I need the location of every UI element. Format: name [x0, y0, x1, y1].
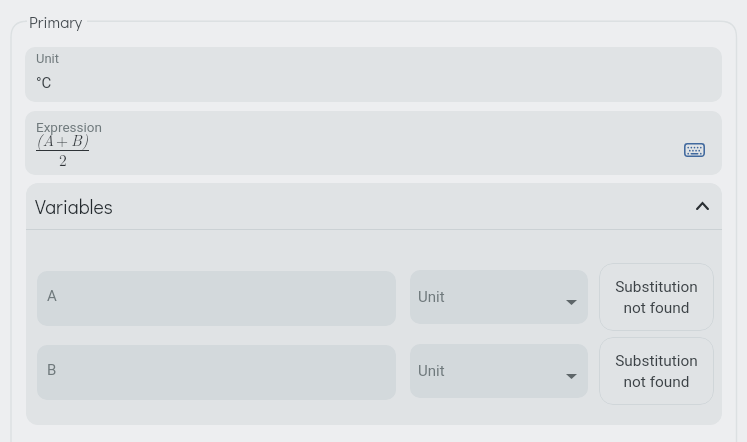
button[interactable]: Substitution not found: [599, 337, 714, 405]
staticText: Substitution not found: [615, 278, 698, 317]
staticText: (A: [36, 128, 54, 150]
staticText: +: [56, 128, 69, 150]
button[interactable]: Substitution not found: [599, 263, 714, 331]
button[interactable]: Variables: [26, 183, 722, 229]
button[interactable]: A: [37, 271, 396, 326]
button[interactable]: B: [37, 345, 396, 400]
staticText: Primary: [29, 11, 83, 32]
staticText: Unit: [36, 51, 60, 66]
button[interactable]: Unit: [25, 47, 722, 102]
staticText: °C: [36, 74, 52, 92]
staticText: Substitution not found: [615, 352, 698, 391]
staticText: Unit: [418, 362, 445, 380]
staticText: B: [47, 361, 57, 379]
staticText: Variables: [35, 194, 113, 219]
staticText: Unit: [418, 288, 445, 306]
staticText: A: [47, 287, 57, 305]
staticText: Expression: [36, 119, 102, 135]
staticText: 2: [59, 148, 67, 170]
button[interactable]: Show keyboard: [680, 136, 708, 164]
button[interactable]: Unit: [410, 270, 588, 324]
staticText: B): [71, 128, 89, 150]
button[interactable]: Expression: [25, 111, 722, 175]
button[interactable]: Unit: [410, 344, 588, 398]
button[interactable]: Collapse variables: [686, 190, 718, 222]
